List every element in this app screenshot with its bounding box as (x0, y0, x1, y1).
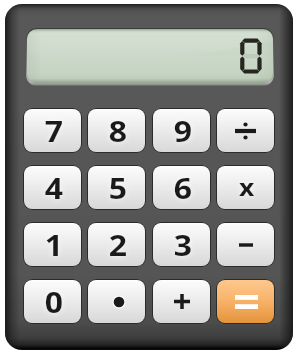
button[interactable]: 1 (23, 222, 82, 267)
button[interactable]: plus (152, 279, 211, 324)
button[interactable]: 5 (87, 165, 146, 210)
button[interactable]: minus (216, 222, 275, 267)
staticText: 7 (45, 112, 64, 150)
staticText: 3 (174, 226, 193, 264)
button[interactable]: 4 (23, 165, 82, 210)
button[interactable]: 0 (23, 279, 82, 324)
staticText: 0 (45, 283, 64, 321)
staticText: 6 (174, 169, 193, 207)
button[interactable]: 8 (87, 108, 146, 153)
button[interactable]: decimal point (87, 279, 146, 324)
staticText: x (239, 171, 255, 202)
staticText: 4 (45, 169, 64, 207)
staticText: 2 (109, 226, 128, 264)
button[interactable]: 3 (152, 222, 211, 267)
staticText: 9 (174, 112, 193, 150)
button[interactable]: 2 (87, 222, 146, 267)
button[interactable]: equals (216, 279, 275, 324)
button[interactable]: 7 (23, 108, 82, 153)
button[interactable]: 9 (152, 108, 211, 153)
staticText: 1 (45, 226, 64, 264)
staticText: 5 (109, 169, 128, 207)
button[interactable]: divide (216, 108, 275, 153)
button[interactable]: multiply (216, 165, 275, 210)
staticText: 8 (109, 112, 128, 150)
button[interactable]: 6 (152, 165, 211, 210)
